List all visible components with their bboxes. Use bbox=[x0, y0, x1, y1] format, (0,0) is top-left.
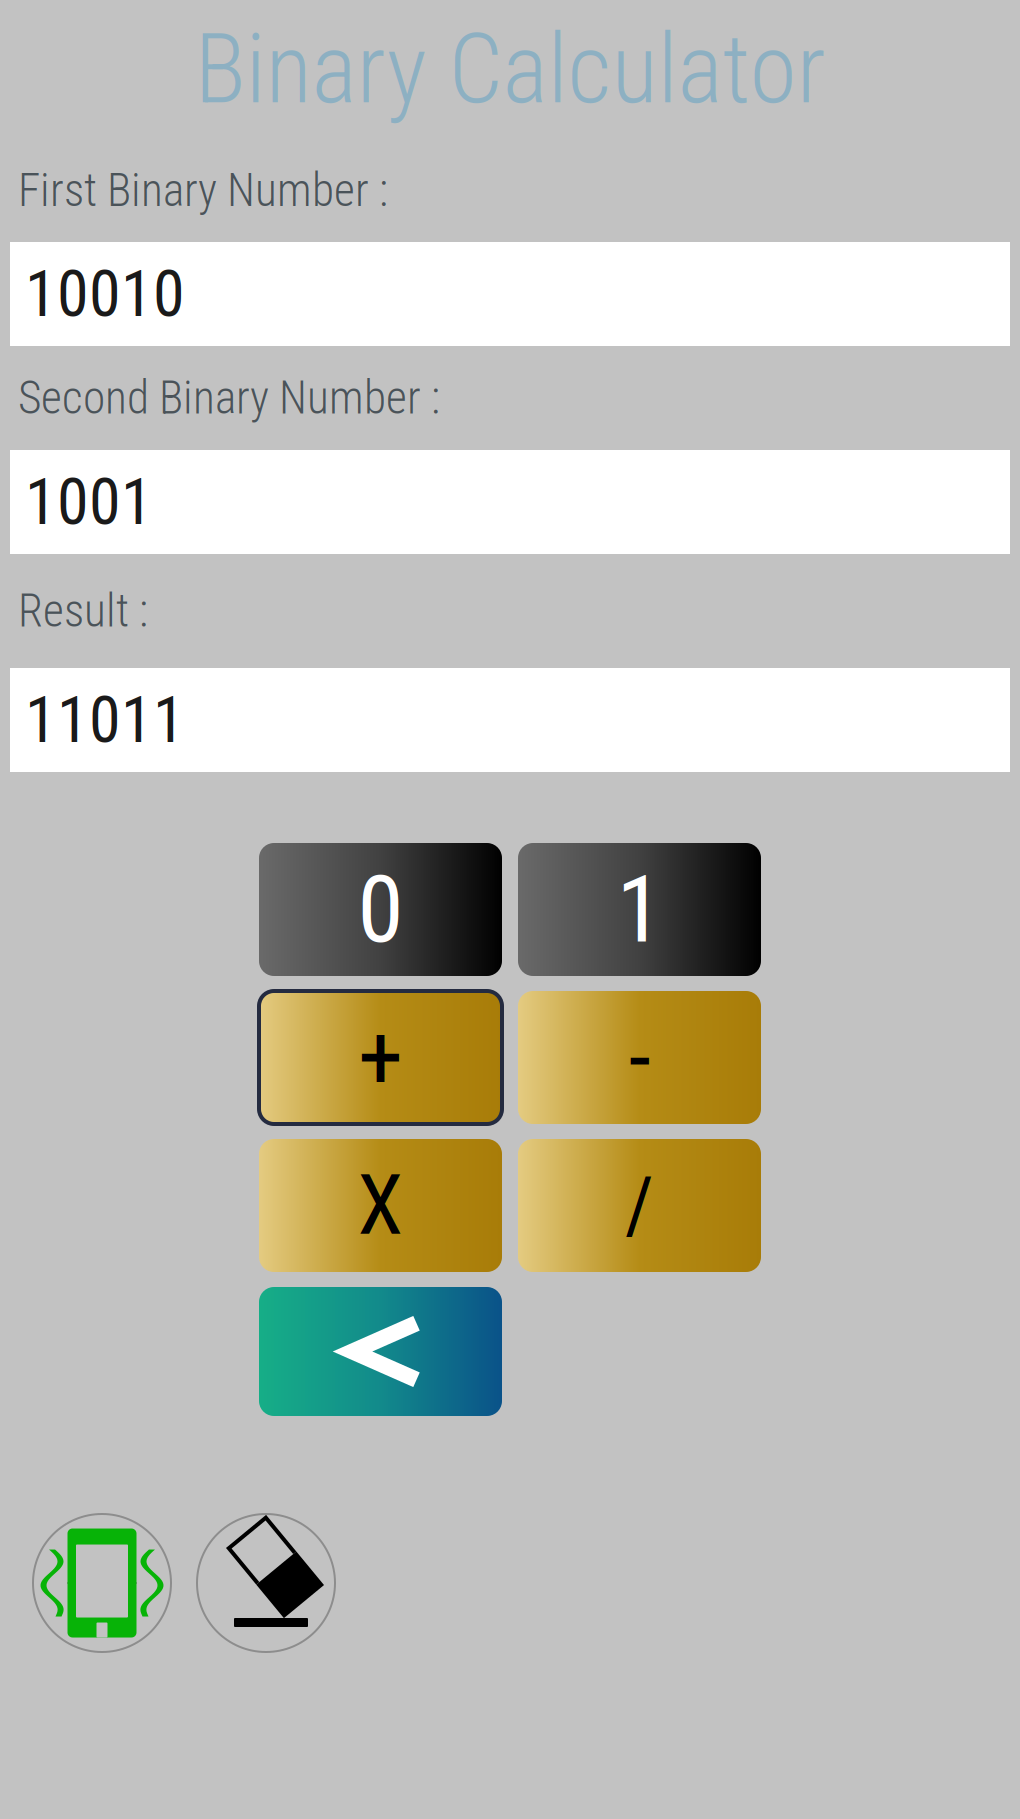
button[interactable]: 0 bbox=[259, 843, 502, 976]
staticText: 1001 bbox=[25, 464, 153, 539]
staticText: 0 bbox=[357, 855, 403, 964]
button[interactable]: Backspace bbox=[259, 1287, 502, 1416]
staticText: / bbox=[625, 1160, 654, 1251]
button[interactable]: 1 bbox=[518, 843, 761, 976]
staticText: 10010 bbox=[25, 256, 185, 331]
staticText: 11011 bbox=[25, 682, 185, 757]
staticText: - bbox=[628, 1004, 650, 1111]
staticText: Second Binary Number : bbox=[18, 371, 440, 424]
button[interactable]: / bbox=[518, 1139, 761, 1272]
staticText: First Binary Number : bbox=[18, 164, 388, 217]
button[interactable]: + bbox=[259, 991, 502, 1124]
staticText: Result : bbox=[18, 584, 148, 637]
button[interactable]: X bbox=[259, 1139, 502, 1272]
staticText: 1 bbox=[616, 855, 662, 964]
button[interactable]: - bbox=[518, 991, 761, 1124]
staticText: + bbox=[358, 1004, 403, 1111]
button[interactable]: Vibrate bbox=[33, 1514, 171, 1652]
staticText: X bbox=[357, 1157, 403, 1254]
button[interactable]: Clear bbox=[197, 1514, 335, 1652]
staticText: Binary Calculator bbox=[194, 13, 825, 126]
